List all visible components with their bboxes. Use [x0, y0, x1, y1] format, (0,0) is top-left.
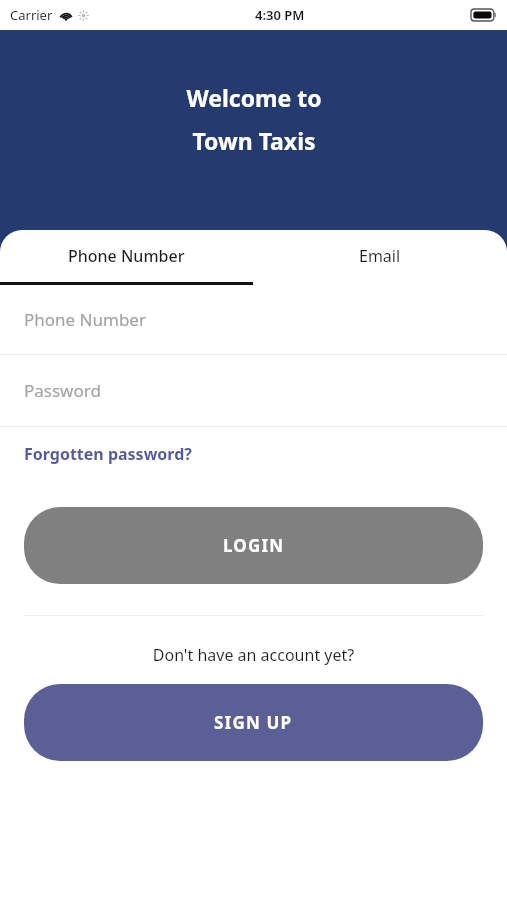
staticText: Password [24, 379, 101, 402]
staticText: LOGIN [223, 534, 285, 557]
staticText: Town Taxis [192, 125, 316, 156]
button[interactable]: Phone Number [0, 285, 507, 354]
button[interactable]: SIGN UP [24, 684, 483, 761]
staticText: Don't have an account yet? [0, 644, 507, 666]
staticText: SIGN UP [214, 711, 293, 734]
staticText: 4:30 PM [255, 6, 305, 24]
button[interactable]: Phone Number [0, 230, 253, 282]
staticText: Phone Number [68, 245, 185, 267]
staticText: Forgotten password? [24, 443, 192, 465]
button[interactable]: Forgotten password? [24, 443, 192, 465]
staticText: Welcome to [186, 82, 322, 113]
button[interactable]: LOGIN [24, 507, 483, 584]
staticText: Email [359, 245, 401, 267]
button[interactable]: Email [253, 230, 507, 282]
staticText: Carrier [10, 6, 53, 24]
staticText: Phone Number [24, 308, 146, 331]
button[interactable]: Password [0, 355, 507, 426]
